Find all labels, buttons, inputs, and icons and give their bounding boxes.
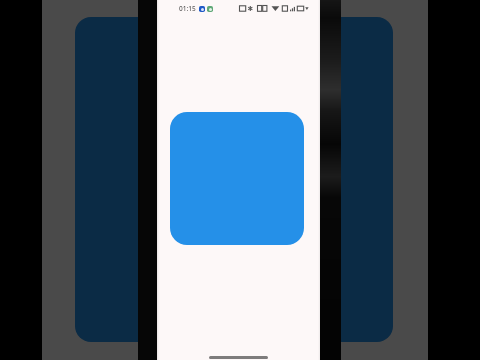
button[interactable]: Blue box [170, 112, 304, 245]
button[interactable]: System status icons [239, 4, 309, 13]
staticText: 01:15 [179, 4, 196, 13]
